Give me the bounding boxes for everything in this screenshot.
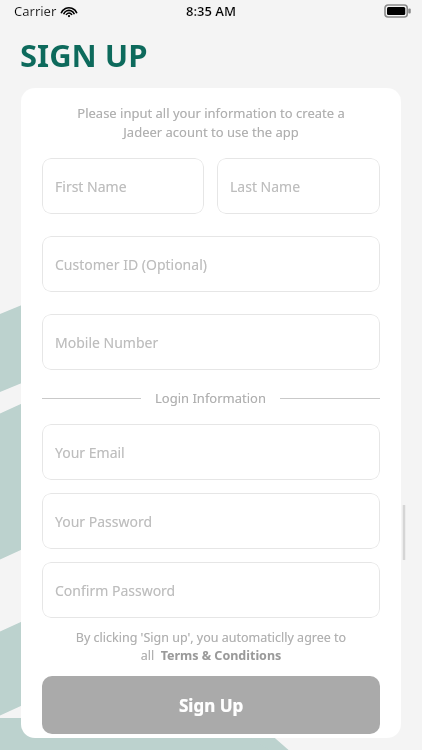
button[interactable]: Your Password	[42, 493, 380, 549]
button[interactable]: Last Name	[217, 158, 380, 214]
staticText: Your Email	[55, 443, 125, 462]
button[interactable]: Customer ID (Optional)	[42, 236, 380, 292]
staticText: Login Information	[155, 389, 266, 407]
button[interactable]: Mobile Number	[42, 314, 380, 370]
staticText: Please input all your information to cre…	[60, 104, 362, 141]
staticText: Last Name	[230, 177, 301, 196]
button[interactable]: Sign Up	[42, 676, 380, 734]
button[interactable]: Confirm Password	[42, 562, 380, 618]
staticText: Sign Up	[179, 694, 244, 717]
staticText: First Name	[55, 177, 127, 196]
staticText: By clicking 'Sign up', you automaticlly …	[72, 629, 350, 664]
button[interactable]: First Name	[42, 158, 204, 214]
staticText: SIGN UP	[20, 34, 148, 76]
staticText: 8:35 AM	[186, 2, 237, 20]
staticText: Mobile Number	[55, 333, 159, 352]
staticText: Customer ID (Optional)	[55, 255, 207, 274]
staticText: Carrier	[14, 2, 57, 20]
staticText: Your Password	[55, 512, 153, 531]
staticText: Confirm Password	[55, 581, 176, 600]
button[interactable]: Your Email	[42, 424, 380, 480]
button[interactable]: By clicking 'Sign up', you automaticlly …	[42, 629, 380, 664]
